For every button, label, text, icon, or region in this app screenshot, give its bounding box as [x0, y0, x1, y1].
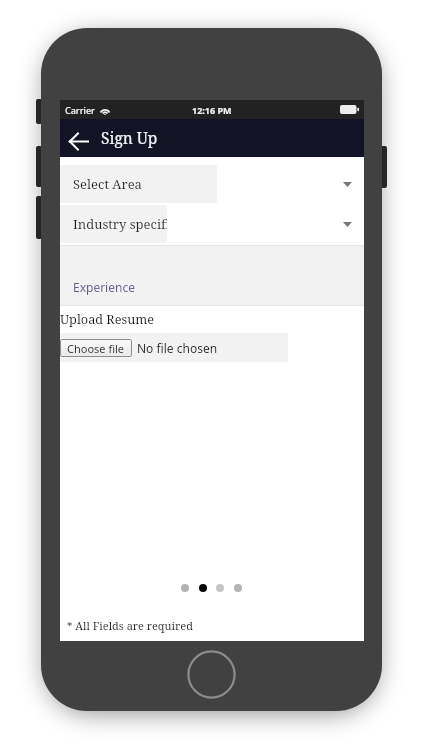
staticText: No file chosen — [137, 340, 218, 356]
staticText: Carrier — [65, 104, 95, 116]
button[interactable]: Choose file — [60, 339, 132, 357]
button[interactable]: Select Area — [60, 165, 217, 203]
button[interactable]: Page 3 — [211, 579, 229, 597]
staticText: Choose file — [67, 341, 125, 356]
button[interactable]: Industry specific — [60, 205, 167, 243]
staticText: Select Area — [73, 175, 142, 193]
button[interactable]: Back — [63, 126, 93, 156]
button[interactable]: Page 2 — [194, 579, 212, 597]
staticText: * All Fields are required — [67, 618, 193, 633]
button[interactable]: Page 4 — [229, 579, 247, 597]
staticText: Experience — [73, 279, 135, 295]
staticText: 12:16 PM — [192, 104, 232, 116]
button[interactable]: Experience — [68, 276, 140, 298]
staticText: Sign Up — [101, 127, 158, 148]
button[interactable]: Page 1 — [176, 579, 194, 597]
staticText: Industry specific — [73, 215, 167, 233]
staticText: Upload Resume — [60, 310, 155, 327]
